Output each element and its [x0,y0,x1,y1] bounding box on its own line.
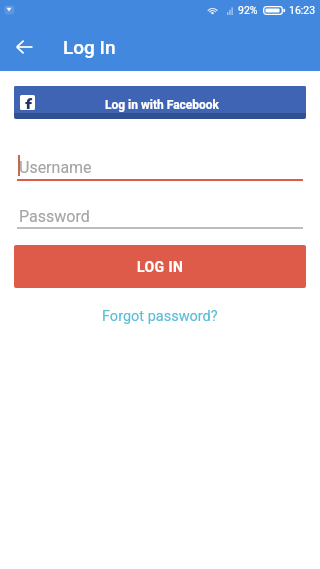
button[interactable]: f [14,86,306,119]
button[interactable]: Forgot password? [92,305,228,328]
staticText: Password [19,207,90,226]
staticText: Log In [63,36,116,58]
button[interactable]: Back [4,27,44,67]
staticText: f [25,95,33,109]
staticText: LOG IN [137,259,184,275]
staticText: 16:23 [289,4,316,16]
button[interactable]: LOG IN [14,245,306,288]
staticText: Username [19,158,92,177]
staticText: 92% [238,4,258,16]
staticText: Log in with Facebook [105,98,219,112]
